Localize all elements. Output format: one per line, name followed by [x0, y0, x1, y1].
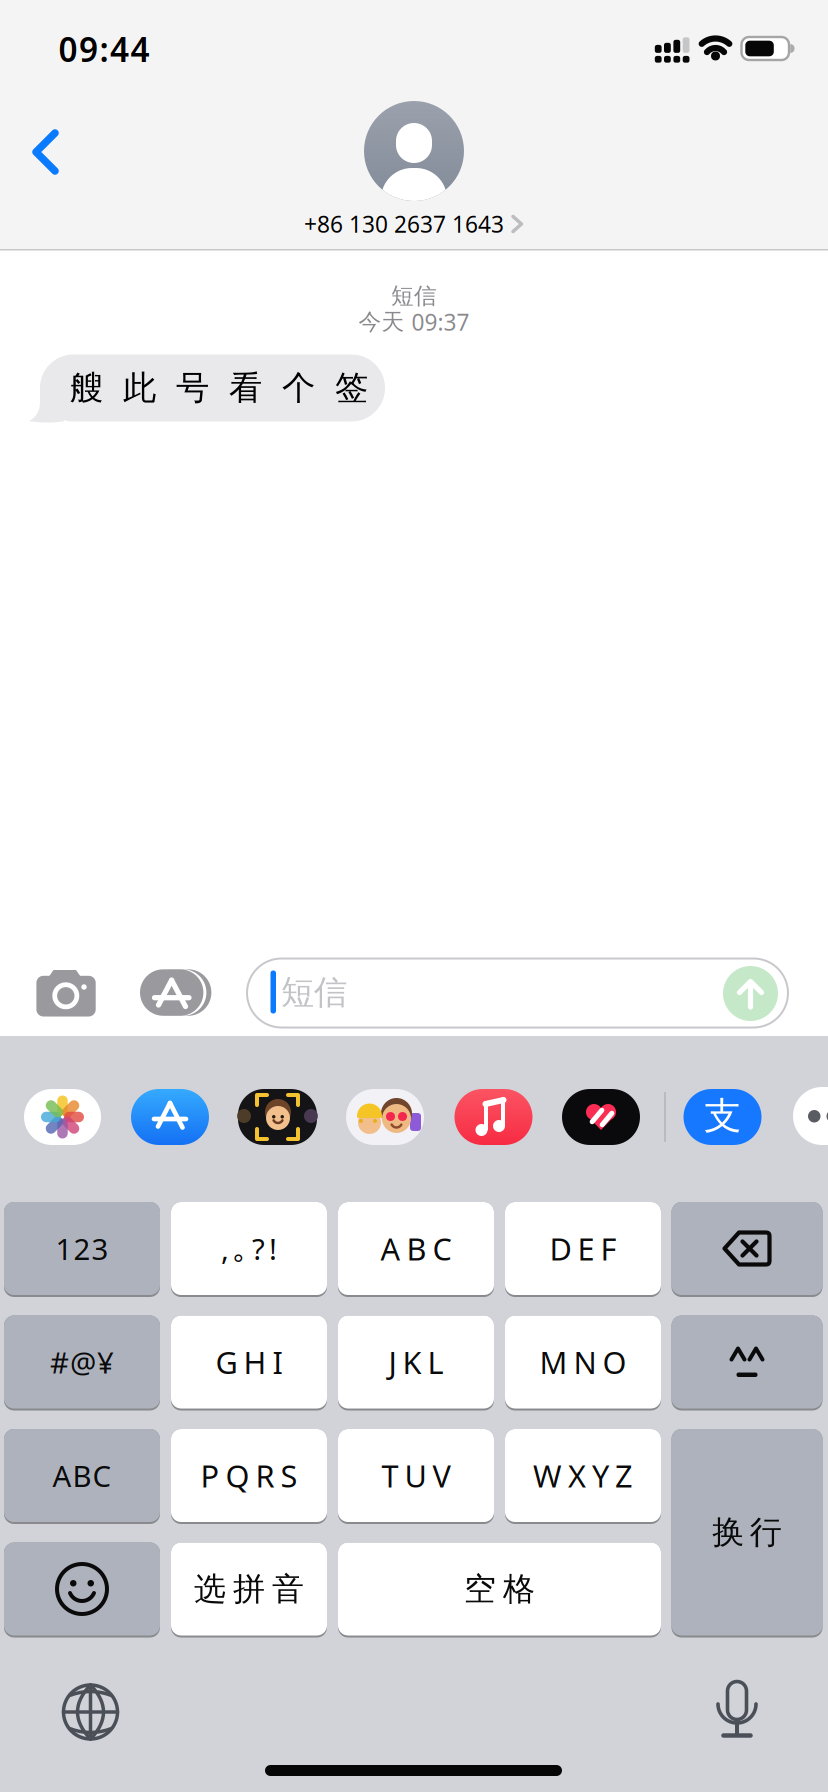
button[interactable]: MNO	[505, 1315, 661, 1410]
button[interactable]: GHI	[171, 1315, 327, 1410]
button[interactable]: Back	[29, 125, 63, 179]
button[interactable]: Text message field	[247, 958, 788, 1027]
staticText: MNO	[539, 1342, 626, 1382]
button[interactable]: Memoji	[346, 1089, 424, 1145]
button[interactable]: App Store	[131, 1089, 209, 1145]
staticText: WXYZ	[533, 1455, 633, 1496]
button[interactable]: ,｡?!	[171, 1202, 327, 1297]
staticText: #@¥	[50, 1342, 114, 1381]
button[interactable]: DEF	[505, 1202, 661, 1297]
button[interactable]: 123	[4, 1202, 160, 1297]
button[interactable]: 换行	[671, 1429, 822, 1637]
staticText: 艘 此 号 看 个 签	[70, 367, 368, 408]
staticText: PQRS	[200, 1455, 297, 1496]
staticText: +86 130 2637 1643	[304, 209, 504, 239]
button[interactable]: ABC	[4, 1429, 160, 1524]
staticText: TUV	[381, 1455, 450, 1496]
button[interactable]: 选拼音	[171, 1542, 327, 1637]
button[interactable]: Contact info	[304, 209, 524, 239]
button[interactable]: Delete	[671, 1202, 822, 1297]
button[interactable]: #@¥	[4, 1315, 160, 1410]
staticText: 支	[704, 1093, 741, 1139]
button[interactable]: PQRS	[171, 1429, 327, 1524]
button[interactable]: Alipay	[683, 1089, 761, 1145]
staticText: DEF	[549, 1228, 616, 1269]
button[interactable]: Next keyboard	[56, 1678, 124, 1746]
button[interactable]: Send	[723, 966, 778, 1021]
staticText: 选拼音	[194, 1569, 304, 1609]
button[interactable]: Memoji Stickers	[238, 1089, 317, 1145]
button[interactable]: ABC	[338, 1202, 494, 1297]
button[interactable]: WXYZ	[505, 1429, 661, 1524]
staticText: ,｡?!	[221, 1229, 277, 1268]
staticText: 09:37	[411, 307, 469, 337]
staticText: ABC	[380, 1228, 451, 1269]
button[interactable]: TUV	[338, 1429, 494, 1524]
button[interactable]: Camera	[34, 970, 98, 1022]
button[interactable]: More apps	[793, 1087, 828, 1145]
button[interactable]: iMessage apps	[138, 967, 213, 1017]
button[interactable]: 空格	[338, 1542, 661, 1637]
button[interactable]: Tones	[671, 1315, 822, 1410]
staticText: 短信	[281, 972, 347, 1013]
button[interactable]: Photos	[24, 1089, 101, 1145]
staticText: ABC	[52, 1456, 111, 1495]
button[interactable]: JKL	[338, 1315, 494, 1410]
staticText: 09:44	[58, 27, 149, 71]
staticText: 换行	[712, 1513, 782, 1552]
button[interactable]: Dictation	[711, 1678, 763, 1746]
button[interactable]: Emoji	[4, 1542, 160, 1637]
staticText: GHI	[215, 1342, 282, 1382]
staticText: 今天	[358, 308, 404, 336]
staticText: 123	[55, 1229, 108, 1268]
staticText: 空格	[464, 1569, 535, 1609]
staticText: JKL	[388, 1342, 443, 1382]
button[interactable]: Heart	[562, 1089, 640, 1145]
button[interactable]: Music	[454, 1089, 532, 1145]
staticText: 短信	[391, 282, 437, 310]
